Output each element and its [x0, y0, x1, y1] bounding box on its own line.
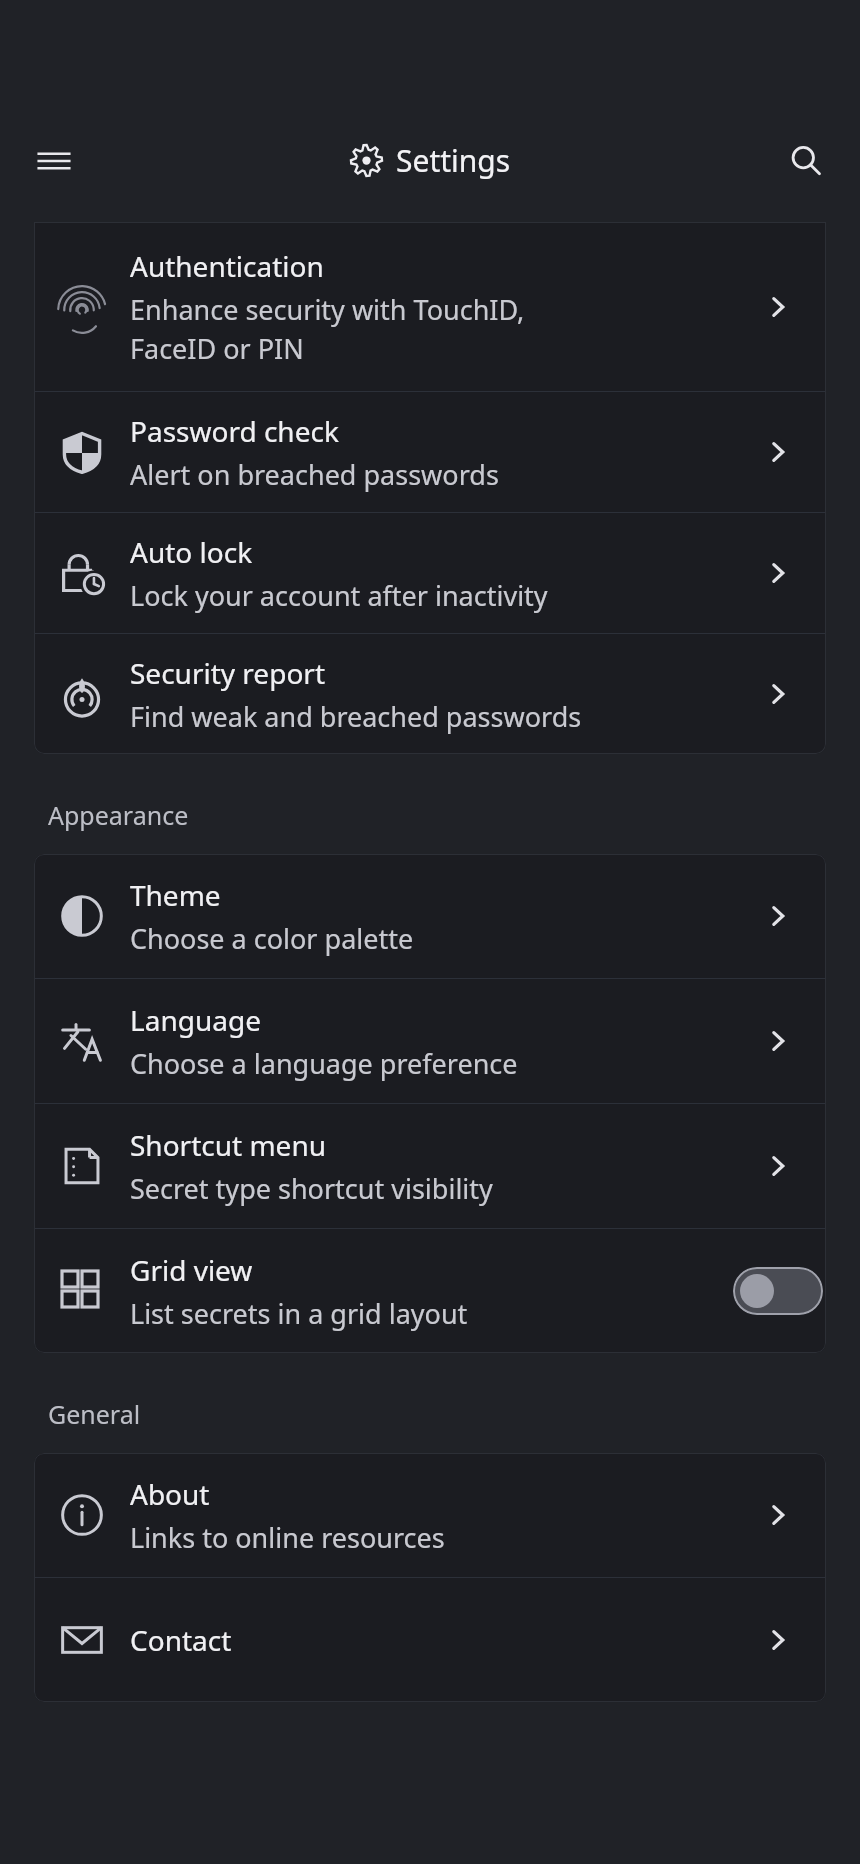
- staticText: Grid view: [130, 1251, 253, 1289]
- button[interactable]: Contact: [34, 1578, 826, 1702]
- staticText: Secret type shortcut visibility: [130, 1170, 493, 1207]
- button[interactable]: Grid view: [34, 1229, 826, 1353]
- staticText: List secrets in a grid layout: [130, 1295, 468, 1332]
- button[interactable]: Security report: [34, 634, 826, 754]
- button[interactable]: Shortcut menu: [34, 1104, 826, 1228]
- button[interactable]: About: [34, 1453, 826, 1577]
- button[interactable]: Grid view toggle: [733, 1267, 823, 1315]
- staticText: Language: [130, 1001, 261, 1039]
- staticText: Authentication: [130, 247, 324, 285]
- button[interactable]: Language: [34, 979, 826, 1103]
- staticText: General: [48, 1397, 141, 1431]
- staticText: Password check: [130, 412, 339, 450]
- button[interactable]: Auto lock: [34, 513, 826, 633]
- staticText: Security report: [130, 654, 325, 692]
- staticText: Auto lock: [130, 533, 253, 571]
- staticText: Choose a language preference: [130, 1045, 518, 1082]
- button[interactable]: Authentication: [34, 222, 826, 391]
- button[interactable]: Theme: [34, 854, 826, 978]
- staticText: Contact: [130, 1621, 232, 1659]
- staticText: Alert on breached passwords: [130, 456, 499, 493]
- staticText: Lock your account after inactivity: [130, 577, 548, 614]
- staticText: Shortcut menu: [130, 1126, 327, 1164]
- staticText: Find weak and breached passwords: [130, 698, 582, 735]
- staticText: Enhance security with TouchID, FaceID or…: [130, 291, 525, 367]
- staticText: Settings: [396, 140, 511, 181]
- staticText: Theme: [130, 876, 221, 914]
- staticText: Appearance: [48, 798, 189, 832]
- staticText: Choose a color palette: [130, 920, 414, 957]
- button[interactable]: Menu: [22, 129, 86, 193]
- staticText: Links to online resources: [130, 1519, 445, 1556]
- button[interactable]: Search: [774, 129, 838, 193]
- staticText: About: [130, 1475, 210, 1513]
- button[interactable]: Password check: [34, 392, 826, 512]
